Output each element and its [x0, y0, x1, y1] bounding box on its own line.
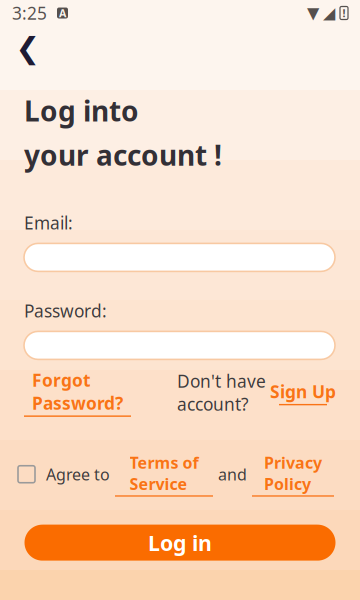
- staticText: ❮: [15, 31, 40, 65]
- staticText: Don't have account?: [177, 370, 266, 416]
- button[interactable]: Log in: [24, 525, 335, 561]
- staticText: Log in: [148, 528, 212, 557]
- staticText: !: [342, 6, 345, 20]
- button[interactable]: Privacy Policy: [247, 452, 334, 497]
- button[interactable]: Agree to terms checkbox: [18, 466, 35, 483]
- staticText: A: [59, 6, 66, 20]
- staticText: your account !: [24, 136, 222, 173]
- staticText: 3:25: [12, 1, 47, 24]
- button[interactable]: Password field: [24, 331, 335, 359]
- staticText: and: [218, 464, 247, 485]
- button[interactable]: Sign Up: [266, 380, 336, 405]
- staticText: Sign Up: [270, 380, 336, 403]
- button[interactable]: Forgot Password?: [24, 368, 131, 417]
- staticText: Agree to: [46, 464, 110, 485]
- button[interactable]: Terms of Service: [110, 452, 213, 497]
- staticText: Log into: [24, 92, 139, 129]
- button[interactable]: Back: [6, 26, 50, 70]
- staticText: Email:: [24, 211, 73, 234]
- staticText: ▼: [307, 4, 319, 22]
- button[interactable]: Email field: [24, 243, 335, 271]
- staticText: ◢: [323, 4, 335, 22]
- staticText: Privacy Policy: [264, 452, 322, 494]
- staticText: Password:: [24, 299, 107, 322]
- staticText: Forgot Password?: [32, 368, 123, 414]
- staticText: Terms of Service: [129, 452, 198, 494]
